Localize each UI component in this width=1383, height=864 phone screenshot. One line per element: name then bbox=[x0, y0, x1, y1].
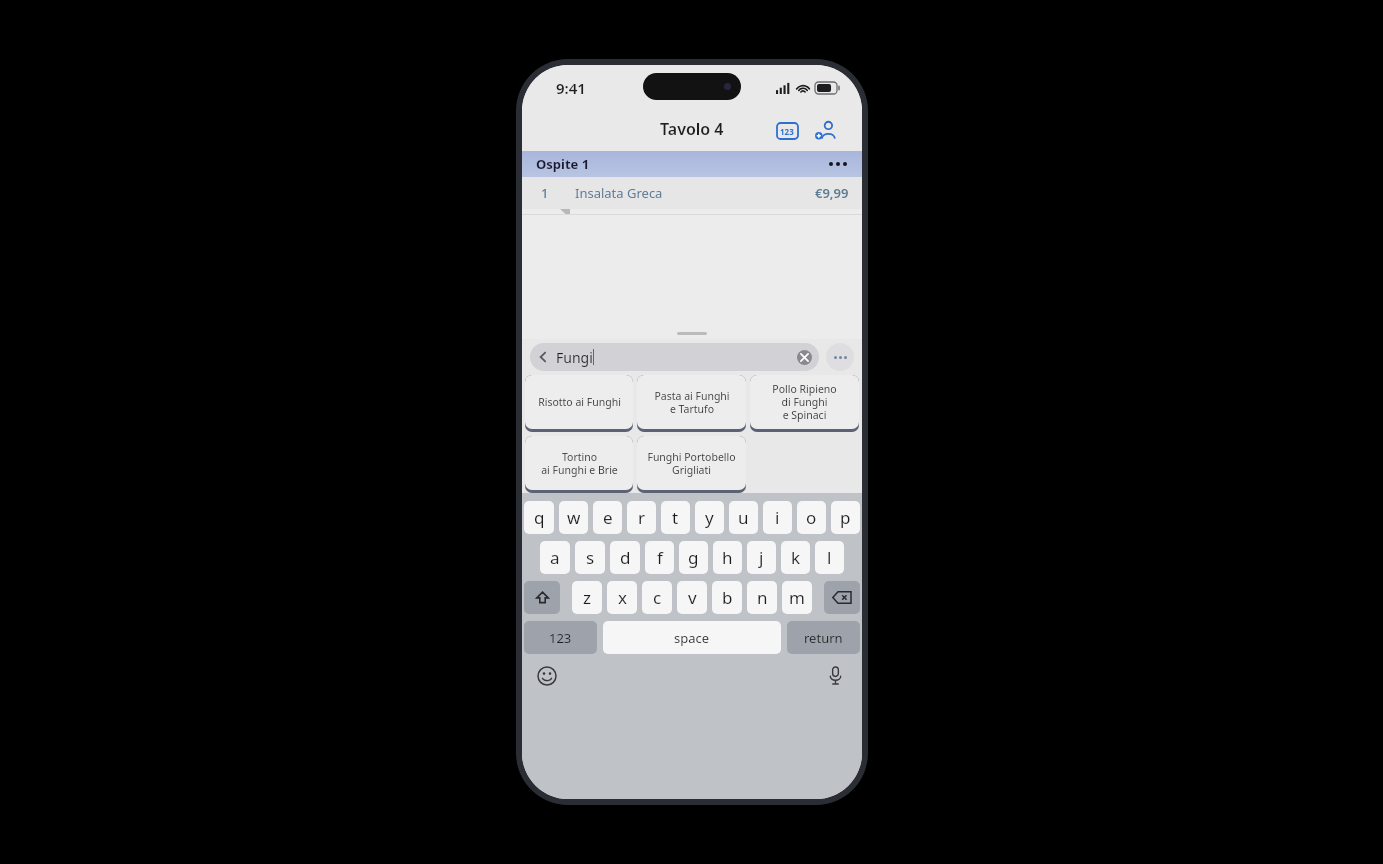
staticText: y bbox=[705, 506, 714, 529]
staticText: z bbox=[583, 586, 591, 609]
staticText: w bbox=[567, 506, 581, 529]
button[interactable]: f bbox=[645, 541, 674, 574]
staticText: d bbox=[620, 546, 631, 569]
button[interactable]: z bbox=[572, 581, 602, 614]
button[interactable]: space bbox=[603, 621, 781, 654]
staticText: Risotto ai Funghi bbox=[538, 395, 621, 409]
staticText: x bbox=[618, 586, 627, 609]
button[interactable]: c bbox=[642, 581, 672, 614]
staticText: Funghi Portobello Grigliati bbox=[647, 450, 736, 477]
button[interactable]: Shift bbox=[524, 581, 560, 614]
button[interactable]: Pollo Ripieno di Funghi e Spinaci bbox=[750, 375, 859, 429]
button[interactable]: t bbox=[661, 501, 690, 534]
button[interactable]: l bbox=[815, 541, 844, 574]
button[interactable]: Guest options bbox=[826, 152, 850, 176]
staticText: j bbox=[759, 546, 764, 569]
button[interactable]: e bbox=[593, 501, 622, 534]
staticText: g bbox=[688, 546, 699, 569]
staticText: p bbox=[840, 506, 851, 529]
button[interactable]: a bbox=[540, 541, 570, 574]
button[interactable]: n bbox=[747, 581, 777, 614]
button[interactable]: Ospite 1 bbox=[522, 151, 862, 177]
button[interactable]: Clear text bbox=[791, 344, 817, 370]
button[interactable]: y bbox=[695, 501, 724, 534]
button[interactable]: d bbox=[610, 541, 640, 574]
staticText: Tortino ai Funghi e Brie bbox=[541, 450, 618, 477]
button[interactable]: g bbox=[679, 541, 708, 574]
staticText: c bbox=[653, 586, 662, 609]
staticText: Pasta ai Funghi e Tartufo bbox=[654, 389, 730, 416]
button[interactable]: return bbox=[787, 621, 860, 654]
button[interactable]: Back bbox=[530, 343, 819, 371]
button[interactable]: r bbox=[627, 501, 656, 534]
button[interactable]: Emoji bbox=[534, 663, 560, 689]
button[interactable]: s bbox=[575, 541, 605, 574]
staticText: Tavolo 4 bbox=[660, 118, 724, 140]
staticText: n bbox=[757, 586, 768, 609]
staticText: b bbox=[722, 586, 733, 609]
button[interactable]: Funghi Portobello Grigliati bbox=[637, 436, 746, 490]
button[interactable]: q bbox=[524, 501, 554, 534]
button[interactable]: Pasta ai Funghi e Tartufo bbox=[637, 375, 746, 429]
button[interactable]: More options bbox=[826, 343, 854, 371]
staticText: l bbox=[827, 546, 832, 569]
button[interactable]: 123 bbox=[524, 621, 597, 654]
staticText: Pollo Ripieno di Funghi e Spinaci bbox=[772, 382, 837, 422]
staticText: q bbox=[534, 506, 545, 529]
staticText: e bbox=[603, 506, 613, 529]
button[interactable]: h bbox=[713, 541, 742, 574]
button[interactable]: b bbox=[712, 581, 742, 614]
staticText: u bbox=[738, 506, 749, 529]
button[interactable]: p bbox=[831, 501, 860, 534]
staticText: 1 bbox=[541, 184, 549, 202]
staticText: m bbox=[789, 586, 805, 609]
button[interactable]: j bbox=[747, 541, 776, 574]
button[interactable]: Add guest bbox=[812, 117, 840, 145]
staticText: o bbox=[806, 506, 817, 529]
button[interactable]: m bbox=[782, 581, 812, 614]
staticText: Fungi bbox=[556, 348, 593, 367]
button[interactable]: Backspace bbox=[824, 581, 860, 614]
button[interactable]: v bbox=[677, 581, 707, 614]
staticText: k bbox=[791, 546, 801, 569]
staticText: s bbox=[586, 546, 595, 569]
staticText: 123 bbox=[780, 126, 794, 137]
staticText: r bbox=[638, 506, 646, 529]
staticText: Insalata Greca bbox=[575, 184, 663, 202]
button[interactable]: x bbox=[607, 581, 637, 614]
button[interactable]: u bbox=[729, 501, 758, 534]
staticText: space bbox=[674, 629, 710, 647]
button[interactable]: i bbox=[763, 501, 792, 534]
staticText: return bbox=[804, 629, 843, 647]
staticText: a bbox=[550, 546, 560, 569]
staticText: 9:41 bbox=[556, 78, 586, 98]
button[interactable]: Dictation bbox=[822, 662, 848, 688]
staticText: 123 bbox=[549, 629, 572, 647]
staticText: t bbox=[672, 506, 679, 529]
staticText: h bbox=[722, 546, 733, 569]
button[interactable]: w bbox=[559, 501, 588, 534]
staticText: v bbox=[688, 586, 697, 609]
staticText: i bbox=[775, 506, 780, 529]
staticText: Ospite 1 bbox=[536, 155, 590, 173]
button[interactable]: o bbox=[797, 501, 826, 534]
button[interactable]: Risotto ai Funghi bbox=[525, 375, 633, 429]
staticText: f bbox=[657, 546, 663, 569]
button[interactable]: Numeric keypad bbox=[774, 118, 800, 144]
button[interactable]: Tortino ai Funghi e Brie bbox=[525, 436, 633, 490]
button[interactable]: 1 bbox=[522, 177, 862, 209]
button[interactable]: k bbox=[781, 541, 810, 574]
button[interactable]: Back bbox=[530, 344, 556, 370]
staticText: €9,99 bbox=[815, 184, 849, 202]
